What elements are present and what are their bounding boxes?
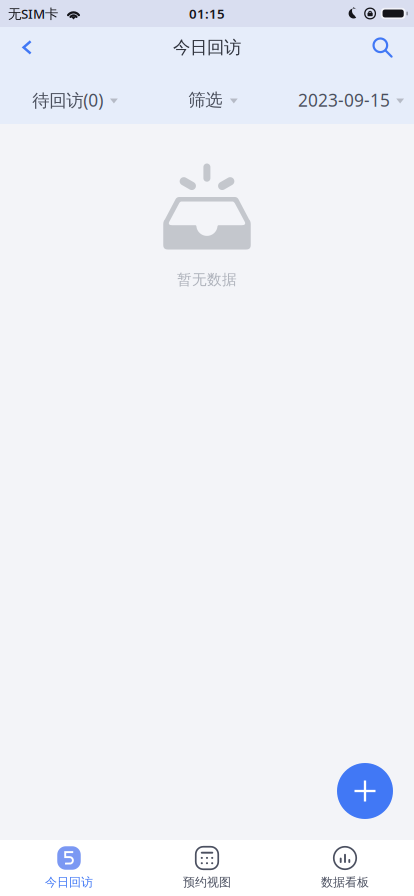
button[interactable]: 返回 [5, 27, 49, 68]
staticText: 筛选 [188, 89, 222, 111]
button[interactable]: 今日回访 [0, 840, 138, 896]
button[interactable]: 待回访(0) [0, 68, 138, 124]
button[interactable]: 数据看板 [276, 840, 414, 896]
button[interactable]: 预约视图 [138, 840, 276, 896]
staticText: 2023-09-15 [298, 88, 390, 111]
staticText: 无SIM卡 [8, 5, 58, 22]
staticText: 今日回访 [45, 875, 93, 890]
button[interactable]: 搜索 [360, 27, 404, 68]
button[interactable]: 筛选 [138, 68, 276, 124]
staticText: 暂无数据 [177, 270, 237, 288]
staticText: 01:15 [189, 5, 225, 22]
staticText: 待回访(0) [32, 88, 103, 111]
button[interactable]: 2023-09-15 [276, 68, 414, 124]
staticText: 预约视图 [183, 875, 231, 890]
staticText: 今日回访 [173, 37, 241, 58]
button[interactable]: 新增 [337, 763, 393, 819]
staticText: 数据看板 [321, 875, 369, 890]
